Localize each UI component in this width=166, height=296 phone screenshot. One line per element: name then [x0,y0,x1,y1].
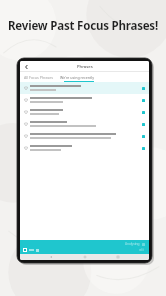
button[interactable]: All Focus Phrases [24,75,54,80]
button[interactable]: Play phrase [140,145,146,151]
button[interactable]: Favorite [20,94,149,106]
button[interactable]: Play phrase [140,85,146,91]
other: Favorite [23,121,29,127]
button[interactable]: Back [23,63,30,70]
other: Status [142,243,145,246]
other: Favorite [23,97,29,103]
button[interactable]: Favorite [20,130,149,142]
button[interactable]: Play phrase [140,109,146,115]
button[interactable]: Play phrase [140,121,146,127]
button[interactable]: Record [23,248,27,252]
other: Favorite [23,85,29,91]
button[interactable]: edit [139,248,145,252]
button[interactable]: Favorite [20,82,149,94]
staticText: Analysing [125,242,140,246]
button[interactable]: Recent apps [116,255,120,259]
staticText: Phrases [77,64,93,70]
staticText: All Focus Phrases [24,75,54,80]
button[interactable]: Favorite [20,106,149,118]
button[interactable]: Play phrase [140,133,146,139]
button[interactable]: Favorite [20,118,149,130]
staticText: Review Past Focus Phrases! [8,18,158,34]
button[interactable]: Home [83,255,87,259]
other: Favorite [23,133,29,139]
button[interactable]: Play phrase [140,97,146,103]
button[interactable]: Back [49,255,53,259]
staticText: We're using recently [60,75,95,80]
other: Favorite [23,109,29,115]
other: Favorite [23,145,29,151]
button[interactable]: We're using recently [60,75,95,80]
button[interactable]: Favorite [20,142,149,154]
